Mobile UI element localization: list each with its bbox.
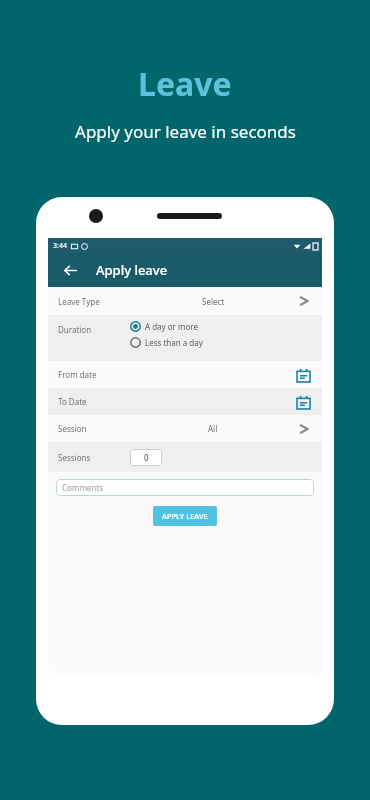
button[interactable]: Leave Type [48,287,322,315]
staticText: Less than a day [145,337,203,348]
button[interactable]: A day or more [130,321,198,332]
staticText: Leave Type [58,296,130,307]
staticText: APPLY LEAVE [162,511,208,521]
button[interactable]: Less than a day [130,337,203,348]
staticText: Apply your leave in seconds [75,120,296,143]
button[interactable]: Pick date [294,366,312,384]
staticText: Comments [62,482,104,493]
button[interactable]: Back [56,256,84,284]
button[interactable]: To Date [48,388,322,415]
button[interactable]: Comments [56,479,314,496]
button[interactable]: Pick date [294,393,312,411]
staticText: Apply leave [96,261,168,279]
staticText: 3:44 [53,241,67,251]
staticText: Select [202,296,225,307]
button[interactable]: From date [48,361,322,388]
button[interactable]: 0 [130,449,162,466]
staticText: All [208,423,218,434]
staticText: To Date [58,396,130,407]
button[interactable]: APPLY LEAVE [153,506,217,526]
button[interactable]: Session [48,415,322,442]
staticText: Session [58,423,130,434]
staticText: Duration [58,324,130,335]
staticText: Sessions [58,452,130,463]
staticText: From date [58,369,130,380]
staticText: A day or more [145,321,198,332]
staticText: 0 [144,452,149,463]
staticText: Leave [138,62,232,106]
